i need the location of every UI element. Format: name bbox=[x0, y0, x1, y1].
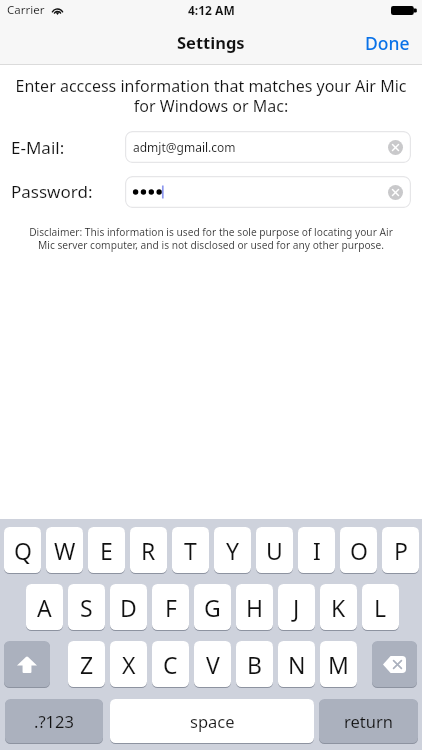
staticText: Y bbox=[226, 535, 240, 566]
button[interactable]: W bbox=[46, 527, 83, 573]
staticText: J bbox=[293, 592, 300, 623]
button[interactable]: L bbox=[362, 584, 399, 630]
staticText: G bbox=[204, 592, 221, 623]
staticText: E-Mail: bbox=[11, 136, 65, 159]
staticText: Q bbox=[14, 535, 32, 566]
button[interactable]: Done bbox=[353, 23, 422, 63]
staticText: K bbox=[331, 592, 346, 623]
button[interactable]: K bbox=[320, 584, 357, 630]
button[interactable]: Backspace bbox=[372, 641, 417, 687]
button[interactable]: Clear text bbox=[388, 140, 403, 155]
staticText: M bbox=[328, 649, 349, 680]
button[interactable]: Clear text bbox=[125, 176, 411, 208]
button[interactable]: Y bbox=[214, 527, 251, 573]
staticText: S bbox=[80, 592, 93, 623]
staticText: T bbox=[184, 535, 197, 566]
button[interactable]: R bbox=[130, 527, 167, 573]
staticText: E bbox=[100, 535, 113, 566]
staticText: V bbox=[206, 649, 220, 680]
button[interactable]: U bbox=[256, 527, 293, 573]
staticText: L bbox=[374, 592, 387, 623]
staticText: P bbox=[394, 535, 408, 566]
staticText: Enter acccess information that matches y… bbox=[14, 75, 408, 116]
staticText: X bbox=[122, 649, 136, 680]
button[interactable]: B bbox=[236, 641, 273, 687]
staticText: A bbox=[37, 592, 52, 623]
button[interactable]: admjt@gmail.com bbox=[125, 131, 411, 163]
button[interactable]: N bbox=[278, 641, 315, 687]
button[interactable]: J bbox=[278, 584, 315, 630]
button[interactable]: V bbox=[194, 641, 231, 687]
staticText: R bbox=[141, 535, 156, 566]
staticText: I bbox=[313, 535, 321, 566]
staticText: Password: bbox=[11, 180, 93, 203]
staticText: return bbox=[344, 710, 393, 732]
button[interactable]: T bbox=[172, 527, 209, 573]
button[interactable]: return bbox=[319, 699, 418, 743]
staticText: U bbox=[266, 535, 283, 566]
staticText: B bbox=[247, 649, 262, 680]
button[interactable]: D bbox=[110, 584, 147, 630]
button[interactable]: C bbox=[152, 641, 189, 687]
staticText: Settings bbox=[177, 31, 245, 53]
staticText: Done bbox=[365, 31, 410, 55]
button[interactable]: A bbox=[26, 584, 63, 630]
staticText: O bbox=[350, 535, 368, 566]
button[interactable]: O bbox=[340, 527, 377, 573]
staticText: .?123 bbox=[34, 710, 74, 732]
staticText: Disclaimer: This information is used for… bbox=[26, 225, 396, 252]
button[interactable]: Clear text bbox=[388, 185, 403, 200]
button[interactable]: F bbox=[152, 584, 189, 630]
button[interactable]: space bbox=[110, 699, 314, 743]
button[interactable]: Shift bbox=[4, 641, 50, 687]
staticText: space bbox=[190, 710, 235, 732]
staticText: H bbox=[246, 592, 264, 623]
button[interactable]: H bbox=[236, 584, 273, 630]
staticText: N bbox=[288, 649, 306, 680]
button[interactable]: .?123 bbox=[5, 699, 103, 743]
button[interactable]: S bbox=[68, 584, 105, 630]
button[interactable]: Z bbox=[68, 641, 105, 687]
staticText: Z bbox=[80, 649, 94, 680]
staticText: admjt@gmail.com bbox=[133, 139, 236, 155]
staticText: C bbox=[163, 649, 178, 680]
button[interactable]: G bbox=[194, 584, 231, 630]
button[interactable]: I bbox=[298, 527, 335, 573]
staticText: Carrier bbox=[7, 2, 45, 18]
staticText: W bbox=[54, 535, 76, 566]
button[interactable]: E bbox=[88, 527, 125, 573]
button[interactable]: Q bbox=[4, 527, 41, 573]
staticText: 4:12 AM bbox=[188, 2, 235, 18]
button[interactable]: X bbox=[110, 641, 147, 687]
staticText: D bbox=[120, 592, 137, 623]
button[interactable]: P bbox=[382, 527, 419, 573]
button[interactable]: M bbox=[320, 641, 357, 687]
staticText: F bbox=[165, 592, 177, 623]
